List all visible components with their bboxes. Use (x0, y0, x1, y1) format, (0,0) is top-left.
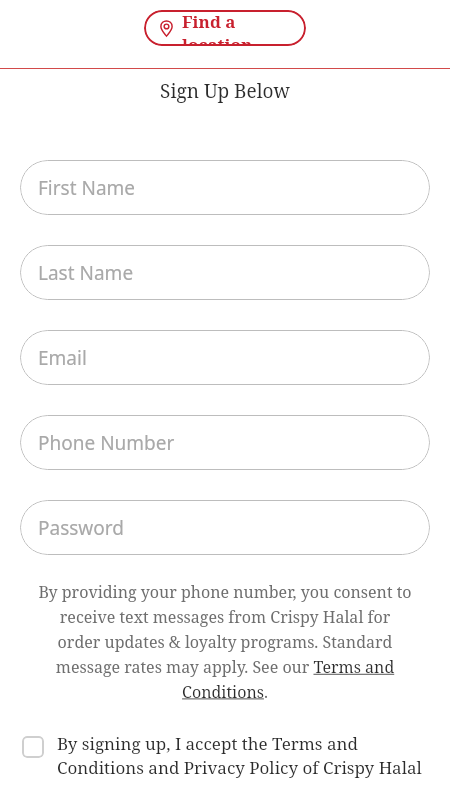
button[interactable]: Phone Number (20, 415, 430, 470)
staticText: Sign Up Below (0, 78, 450, 104)
staticText: By providing your phone number, you cons… (38, 581, 412, 702)
staticText: Phone Number (38, 430, 175, 456)
staticText: Find a location (182, 10, 292, 46)
button[interactable]: Find a location (144, 10, 306, 46)
staticText: Last Name (38, 260, 134, 286)
staticText: Email (38, 345, 87, 371)
staticText: First Name (38, 175, 136, 201)
button[interactable]: Email (20, 330, 430, 385)
staticText: By signing up, I accept the Terms and Co… (57, 732, 434, 779)
button[interactable]: Password (20, 500, 430, 555)
other: Accept terms checkbox (22, 736, 44, 758)
button[interactable]: Accept terms checkbox (0, 732, 450, 779)
button[interactable]: First Name (20, 160, 430, 215)
staticText: Password (38, 515, 124, 541)
button[interactable]: Last Name (20, 245, 430, 300)
